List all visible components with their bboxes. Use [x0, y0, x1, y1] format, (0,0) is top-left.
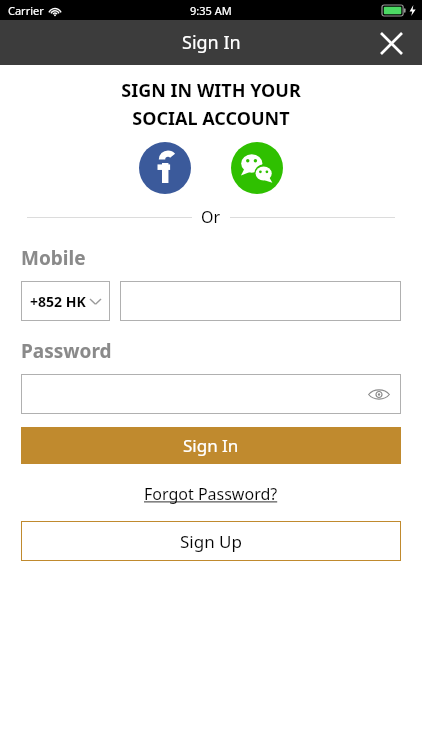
- button[interactable]: Forgot Password?: [138, 481, 284, 507]
- button[interactable]: Sign in with WeChat: [231, 142, 283, 194]
- button[interactable]: Sign Up: [21, 521, 401, 561]
- staticText: Or: [201, 206, 221, 228]
- button[interactable]: +852 HK: [21, 281, 110, 321]
- staticText: +852 HK: [30, 292, 86, 311]
- button[interactable]: Sign in with Facebook: [139, 142, 191, 194]
- button[interactable]: Sign In: [21, 427, 401, 464]
- staticText: SOCIAL ACCOUNT: [0, 106, 422, 131]
- staticText: Mobile: [21, 245, 86, 271]
- staticText: Forgot Password?: [144, 483, 278, 505]
- staticText: 9:35 AM: [190, 3, 232, 18]
- staticText: SIGN IN WITH YOUR: [0, 78, 422, 103]
- staticText: Password: [21, 338, 112, 364]
- button[interactable]: Password: [21, 374, 401, 414]
- button[interactable]: Mobile number: [120, 281, 401, 321]
- staticText: Sign Up: [180, 530, 242, 553]
- button[interactable]: Close: [374, 26, 408, 60]
- staticText: Sign In: [183, 434, 239, 457]
- staticText: Carrier: [8, 3, 44, 18]
- staticText: Sign In: [182, 30, 241, 55]
- button[interactable]: Show password: [366, 384, 392, 404]
